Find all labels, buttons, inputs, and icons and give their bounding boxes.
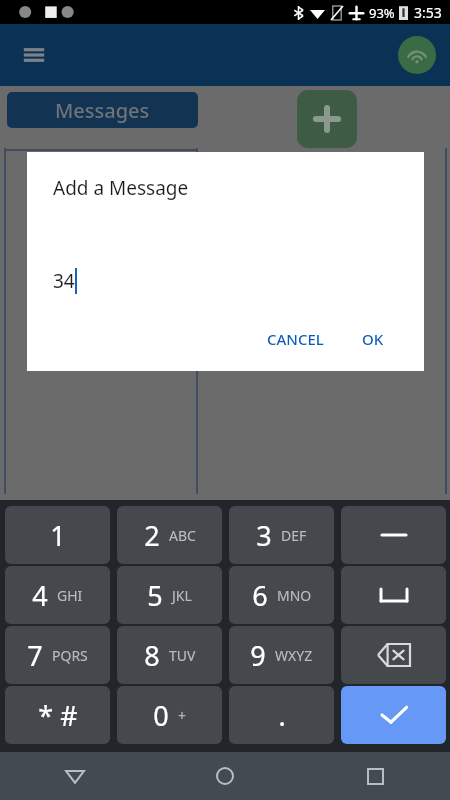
staticText: CANCEL — [267, 329, 324, 349]
button[interactable]: 8 — [117, 626, 222, 684]
staticText: GHI — [57, 586, 83, 605]
button[interactable]: 1 — [5, 506, 110, 564]
button[interactable]: 4 — [5, 566, 110, 624]
staticText: DEF — [281, 526, 307, 545]
button[interactable]: Home — [150, 752, 300, 800]
staticText: Add a Message — [53, 175, 189, 201]
staticText: 5 — [147, 577, 163, 614]
staticText: 1 — [50, 517, 66, 554]
button[interactable]: Enter — [341, 686, 446, 744]
button[interactable]: Space — [341, 566, 446, 624]
button[interactable]: CANCEL — [257, 321, 334, 357]
staticText: Messages — [55, 97, 150, 124]
button[interactable]: Dash — [341, 506, 446, 564]
staticText: * # — [38, 697, 78, 734]
button[interactable]: Open navigation menu — [14, 35, 54, 75]
staticText: 4 — [32, 577, 48, 614]
staticText: JKL — [172, 586, 192, 605]
button[interactable]: 7 — [5, 626, 110, 684]
button[interactable]: . — [229, 686, 334, 744]
button[interactable]: Back — [0, 752, 150, 800]
button[interactable]: OK — [352, 321, 394, 357]
button[interactable]: 5 — [117, 566, 222, 624]
button[interactable]: 9 — [229, 626, 334, 684]
button[interactable]: Messages — [7, 92, 198, 128]
button[interactable]: Delete — [341, 626, 446, 684]
button[interactable]: Recent apps — [300, 752, 450, 800]
button[interactable]: * # — [5, 686, 110, 744]
staticText: PQRS — [52, 646, 88, 665]
staticText: ABC — [169, 526, 196, 545]
button[interactable]: Add — [297, 90, 357, 148]
button[interactable]: 2 — [117, 506, 222, 564]
staticText: 34 — [53, 268, 75, 294]
button[interactable]: 3 — [229, 506, 334, 564]
staticText: + — [178, 706, 187, 725]
staticText: TUV — [169, 646, 196, 665]
staticText: 93% — [369, 4, 395, 22]
staticText: 6 — [252, 577, 268, 614]
staticText: . — [278, 697, 286, 734]
staticText: WXYZ — [275, 646, 313, 665]
button[interactable]: 6 — [229, 566, 334, 624]
staticText: 3 — [256, 517, 272, 554]
staticText: OK — [362, 329, 384, 349]
staticText: 0 — [153, 697, 169, 734]
button[interactable]: Connection status — [398, 36, 436, 74]
staticText: 2 — [144, 517, 160, 554]
staticText: 9 — [250, 637, 266, 674]
staticText: 3:53 — [414, 3, 442, 22]
staticText: 8 — [144, 637, 160, 674]
staticText: MNO — [277, 586, 312, 605]
staticText: 18 — [85, 155, 120, 196]
staticText: 7 — [27, 637, 43, 674]
button[interactable]: 0 — [117, 686, 222, 744]
